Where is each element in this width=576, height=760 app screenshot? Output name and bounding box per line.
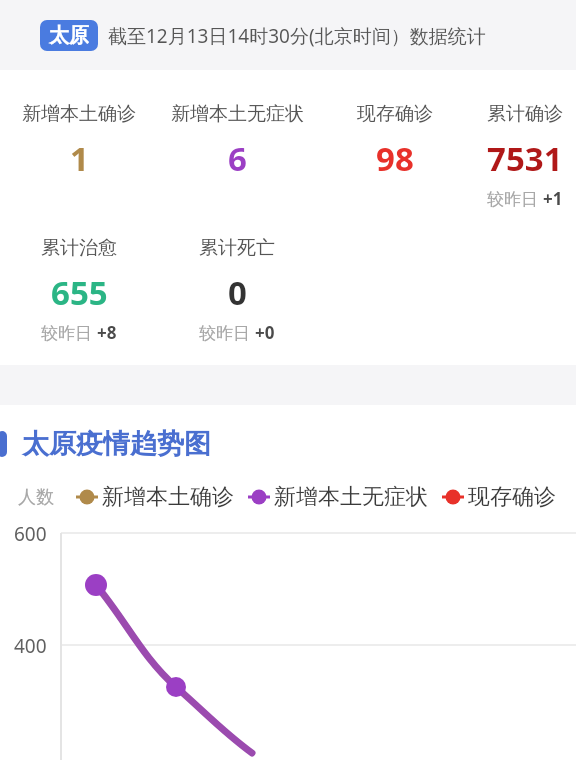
button[interactable]: 现存确诊 (316, 102, 474, 181)
staticText: +0 (255, 321, 275, 344)
button[interactable]: 新增本土确诊 (0, 102, 158, 181)
staticText: 1 (70, 136, 89, 181)
staticText: +1 (543, 187, 563, 210)
staticText: 98 (376, 136, 414, 181)
staticText: 新增本土无症状 (171, 102, 304, 126)
staticText: 截至12月13日14时30分(北京时间）数据统计 (108, 23, 486, 49)
button[interactable]: 累计确诊 (474, 102, 576, 210)
button[interactable]: 太原疫情趋势图 (0, 427, 576, 461)
staticText: 新增本土无症状 (274, 483, 428, 511)
staticText: 7531 (487, 136, 563, 181)
staticText: 现存确诊 (357, 102, 433, 126)
button[interactable]: 太原 (40, 20, 486, 51)
staticText: 新增本土确诊 (102, 483, 234, 511)
staticText: 累计死亡 (199, 236, 275, 260)
button[interactable]: 新增本土确诊 (76, 483, 234, 511)
button[interactable]: 新增本土无症状 (248, 483, 428, 511)
staticText: 较昨日 (487, 187, 543, 210)
button[interactable]: 现存确诊 (442, 483, 556, 511)
staticText: 400 (14, 633, 47, 659)
staticText: 新增本土确诊 (22, 102, 136, 126)
staticText: 600 (14, 521, 47, 547)
staticText: 太原疫情趋势图 (22, 427, 211, 461)
staticText: 0 (228, 270, 247, 315)
staticText: 累计确诊 (487, 102, 563, 126)
staticText: 累计治愈 (41, 236, 117, 260)
staticText: 太原 (49, 23, 89, 48)
staticText: 6 (228, 136, 247, 181)
staticText: 较昨日 (199, 321, 255, 344)
staticText: +8 (97, 321, 117, 344)
button[interactable]: 新增本土无症状 (158, 102, 316, 181)
button[interactable]: 累计死亡 (158, 236, 316, 344)
staticText: 现存确诊 (468, 483, 556, 511)
button[interactable]: 累计治愈 (0, 236, 158, 344)
staticText: 人数 (18, 486, 54, 509)
staticText: 655 (51, 270, 108, 315)
staticText: 较昨日 (41, 321, 97, 344)
